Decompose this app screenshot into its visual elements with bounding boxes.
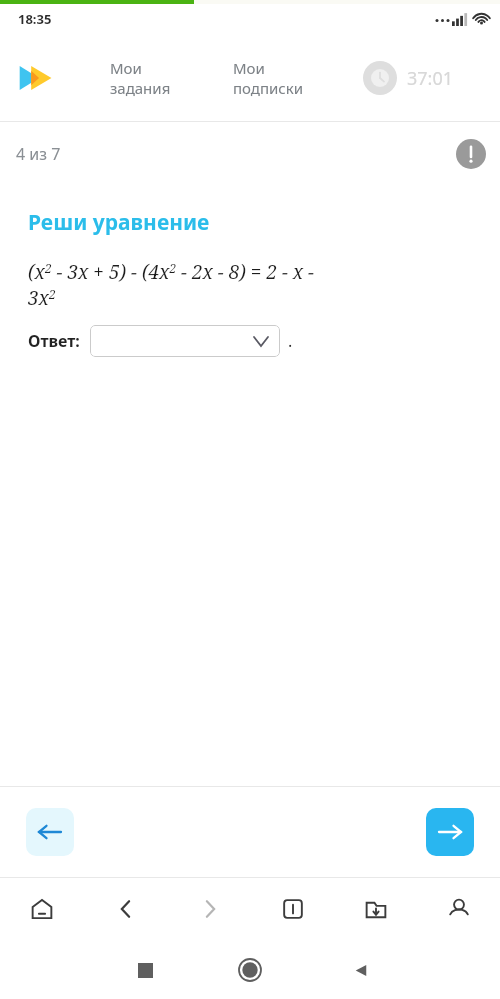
button[interactable]: Назад [344, 953, 378, 987]
staticText: 18:35 [18, 10, 52, 28]
button[interactable]: Загрузки [334, 878, 417, 940]
button[interactable]: Назад [26, 808, 74, 856]
button[interactable]: Обзор [128, 953, 162, 987]
button[interactable]: Мои подписки [233, 58, 304, 98]
button[interactable]: Информация [456, 139, 486, 169]
button[interactable]: Главный экран [230, 950, 270, 990]
button[interactable]: Выбрать ответ [90, 325, 280, 357]
button[interactable]: Вперёд [168, 878, 251, 940]
button[interactable]: Назад [84, 878, 168, 940]
staticText: Ответ: [28, 330, 80, 352]
button[interactable]: Мои задания [110, 58, 171, 98]
button[interactable]: Домой [0, 878, 84, 940]
staticText: 3x2 [28, 285, 56, 311]
staticText: . [288, 330, 293, 352]
staticText: (x2 − 3x + 5) − (4x2 − 2x − 8) = 2 − x − [28, 259, 314, 285]
button[interactable]: Реши уравнение [28, 208, 210, 237]
staticText: 37:01 [407, 66, 454, 91]
staticText: 4 из 7 [16, 143, 61, 165]
button[interactable]: Далее [426, 808, 474, 856]
button[interactable]: Вкладки [251, 878, 334, 940]
button[interactable]: Профиль [417, 878, 500, 940]
button[interactable]: Логотип [16, 60, 62, 96]
